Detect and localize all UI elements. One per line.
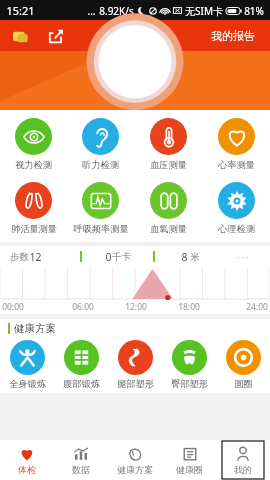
staticText: 圆圈 — [234, 378, 253, 390]
staticText: 听力检测 — [82, 159, 119, 171]
button[interactable]: 血氧测量 — [134, 181, 202, 236]
button[interactable]: 心理检测 — [202, 181, 270, 236]
staticText: 腿部塑形 — [117, 378, 154, 390]
staticText: 健康方案 — [14, 322, 56, 335]
staticText: 12:00 — [125, 301, 147, 313]
staticText: 0 — [105, 250, 112, 264]
button[interactable]: 呼吸频率测量 — [67, 181, 134, 236]
staticText: 臀部塑形 — [171, 378, 208, 390]
staticText: 00:00 — [2, 301, 24, 313]
button[interactable]: Share — [45, 25, 67, 47]
staticText: 心率测量 — [218, 159, 255, 171]
staticText: 全身锻炼 — [9, 378, 46, 390]
staticText: 体检 — [18, 464, 36, 475]
button[interactable]: 腹部锻炼 — [54, 340, 108, 390]
button[interactable]: 圆圈 — [216, 340, 270, 390]
staticText: 健康圈 — [176, 464, 203, 475]
button[interactable]: 腿部塑形 — [108, 340, 162, 390]
staticText: 12 — [29, 250, 42, 264]
staticText: 米 — [190, 251, 200, 263]
staticText: 8 — [181, 250, 188, 264]
staticText: · · · — [237, 251, 249, 263]
button[interactable]: 心率测量 — [202, 117, 270, 172]
staticText: 千卡 — [112, 251, 131, 263]
button[interactable]: 我的 — [216, 440, 270, 480]
staticText: 06:00 — [72, 301, 94, 313]
staticText: 15:21 — [6, 3, 35, 18]
staticText: 腹部锻炼 — [63, 378, 100, 390]
staticText: 我的 — [234, 464, 252, 475]
staticText: 无SIM卡 — [185, 4, 223, 18]
button[interactable]: 听力检测 — [67, 117, 134, 172]
button[interactable]: 肺活量测量 — [0, 181, 67, 236]
staticText: 呼吸频率测量 — [73, 223, 129, 235]
staticText: 步数 — [10, 251, 29, 263]
staticText: 心理检测 — [218, 223, 255, 235]
button[interactable]: 血压测量 — [134, 117, 202, 172]
staticText: 数据 — [72, 464, 90, 475]
staticText: 8.92K/s — [99, 4, 134, 18]
staticText: 18:00 — [178, 301, 200, 313]
button[interactable]: 全身锻炼 — [0, 340, 54, 390]
button[interactable]: Coins — [9, 25, 31, 47]
button[interactable]: 视力检测 — [0, 117, 67, 172]
staticText: 视力检测 — [15, 159, 52, 171]
staticText: 肺活量测量 — [11, 223, 57, 235]
staticText: 81% — [244, 4, 264, 18]
button[interactable]: 臀部塑形 — [162, 340, 216, 390]
staticText: 血氧测量 — [150, 223, 187, 235]
button[interactable]: 健康方案 — [108, 440, 162, 480]
staticText: 我的报告 — [211, 29, 255, 43]
button[interactable]: 数据 — [54, 440, 108, 480]
button[interactable]: 我的报告 — [205, 26, 261, 46]
staticText: 24:00 — [246, 301, 268, 313]
staticText: ... — [87, 4, 96, 18]
button[interactable]: 健康圈 — [162, 440, 216, 480]
staticText: 血压测量 — [150, 159, 187, 171]
staticText: 健康方案 — [117, 464, 153, 475]
button[interactable]: 体检 — [0, 440, 54, 480]
